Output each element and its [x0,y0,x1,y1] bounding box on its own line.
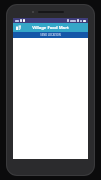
button[interactable]: SEND LOCATION [13,32,88,38]
staticText: SEND LOCATION [40,33,61,37]
staticText: Village Food Mart [32,25,69,31]
button[interactable]: Open navigation menu [15,24,22,31]
